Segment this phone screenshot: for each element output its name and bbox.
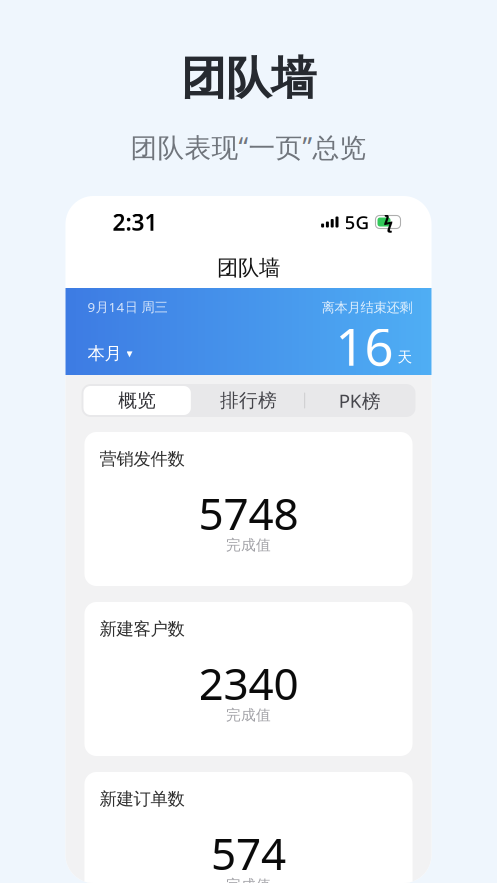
staticText: 团队墙 (217, 255, 280, 281)
staticText: 5G (344, 210, 369, 234)
button[interactable]: 本月 (87, 343, 132, 364)
staticText: 团队表现“一页”总览 (130, 129, 366, 165)
staticText: 新建订单数 (99, 788, 184, 810)
button[interactable]: PK榜 (304, 384, 415, 417)
staticText: PK榜 (339, 388, 381, 413)
staticText: 574 (211, 824, 286, 882)
staticText: 2340 (198, 654, 298, 712)
staticText: 完成值 (226, 876, 271, 883)
staticText: 9月14日 周三 (87, 298, 167, 316)
staticText: ϟ (383, 210, 393, 233)
staticText: 概览 (118, 389, 156, 412)
staticText: ▾ (126, 346, 132, 360)
staticText: 营销发件数 (99, 448, 184, 470)
staticText: 离本月结束还剩 (321, 299, 412, 316)
staticText: 排行榜 (220, 389, 277, 412)
button[interactable]: 排行榜 (193, 384, 304, 417)
staticText: 5748 (198, 484, 298, 542)
button[interactable]: 概览 (81, 384, 193, 417)
staticText: 新建客户数 (99, 618, 184, 640)
staticText: 天 (397, 348, 412, 366)
staticText: 本月 (87, 343, 121, 364)
staticText: 团队墙 (181, 51, 316, 106)
staticText: 完成值 (226, 536, 271, 554)
staticText: 16 (335, 312, 393, 380)
staticText: 2:31 (112, 207, 157, 237)
staticText: 完成值 (226, 706, 271, 724)
